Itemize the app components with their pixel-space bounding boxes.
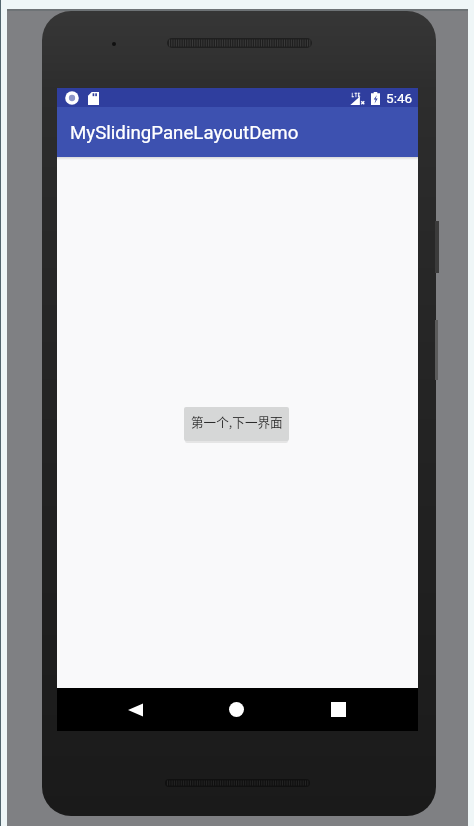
staticText: 5:46 bbox=[386, 90, 413, 106]
button[interactable]: Recent apps bbox=[308, 688, 368, 731]
staticText: 第一个,下一界面 bbox=[191, 412, 283, 430]
button[interactable]: Home bbox=[206, 688, 267, 731]
button[interactable]: Back bbox=[105, 688, 165, 731]
button[interactable]: 第一个,下一界面 bbox=[184, 407, 289, 441]
staticText: MySlidingPaneLayoutDemo bbox=[70, 122, 299, 144]
